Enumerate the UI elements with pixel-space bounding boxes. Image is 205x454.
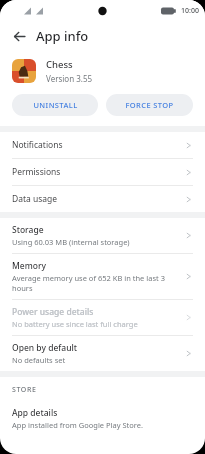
staticText: Average memory use of 652 KB in the last… [12, 273, 178, 293]
button[interactable]: Storage [0, 218, 205, 253]
staticText: 10:00 [181, 6, 199, 16]
staticText: App details [12, 407, 58, 419]
staticText: STORE [12, 385, 37, 395]
staticText: Storage [12, 224, 44, 236]
staticText: App installed from Google Play Store. [12, 420, 144, 430]
button[interactable]: Power usage details [0, 300, 205, 335]
staticText: Memory [12, 260, 47, 272]
button[interactable]: UNINSTALL [12, 94, 98, 116]
button[interactable]: Permissions [0, 159, 205, 185]
staticText: Chess [46, 58, 73, 71]
staticText: Open by default [12, 342, 78, 354]
button[interactable]: FORCE STOP [106, 94, 193, 116]
staticText: Permissions [12, 166, 184, 178]
staticText: Version 3.55 [46, 73, 93, 84]
button[interactable]: Back [8, 25, 30, 47]
button[interactable]: Memory [0, 254, 205, 299]
staticText: Power usage details [12, 306, 94, 318]
button[interactable]: Notifications [0, 132, 205, 158]
button[interactable]: App details [0, 401, 205, 436]
button[interactable]: Open by default [0, 336, 205, 371]
staticText: Data usage [12, 193, 184, 205]
staticText: No battery use since last full charge [12, 319, 138, 329]
staticText: UNINSTALL [33, 100, 78, 110]
button[interactable]: Data usage [0, 186, 205, 212]
staticText: Using 60.03 MB (internal storage) [12, 237, 130, 247]
staticText: App info [36, 27, 89, 45]
staticText: No defaults set [12, 355, 66, 365]
staticText: Notifications [12, 139, 184, 151]
staticText: FORCE STOP [125, 100, 174, 110]
